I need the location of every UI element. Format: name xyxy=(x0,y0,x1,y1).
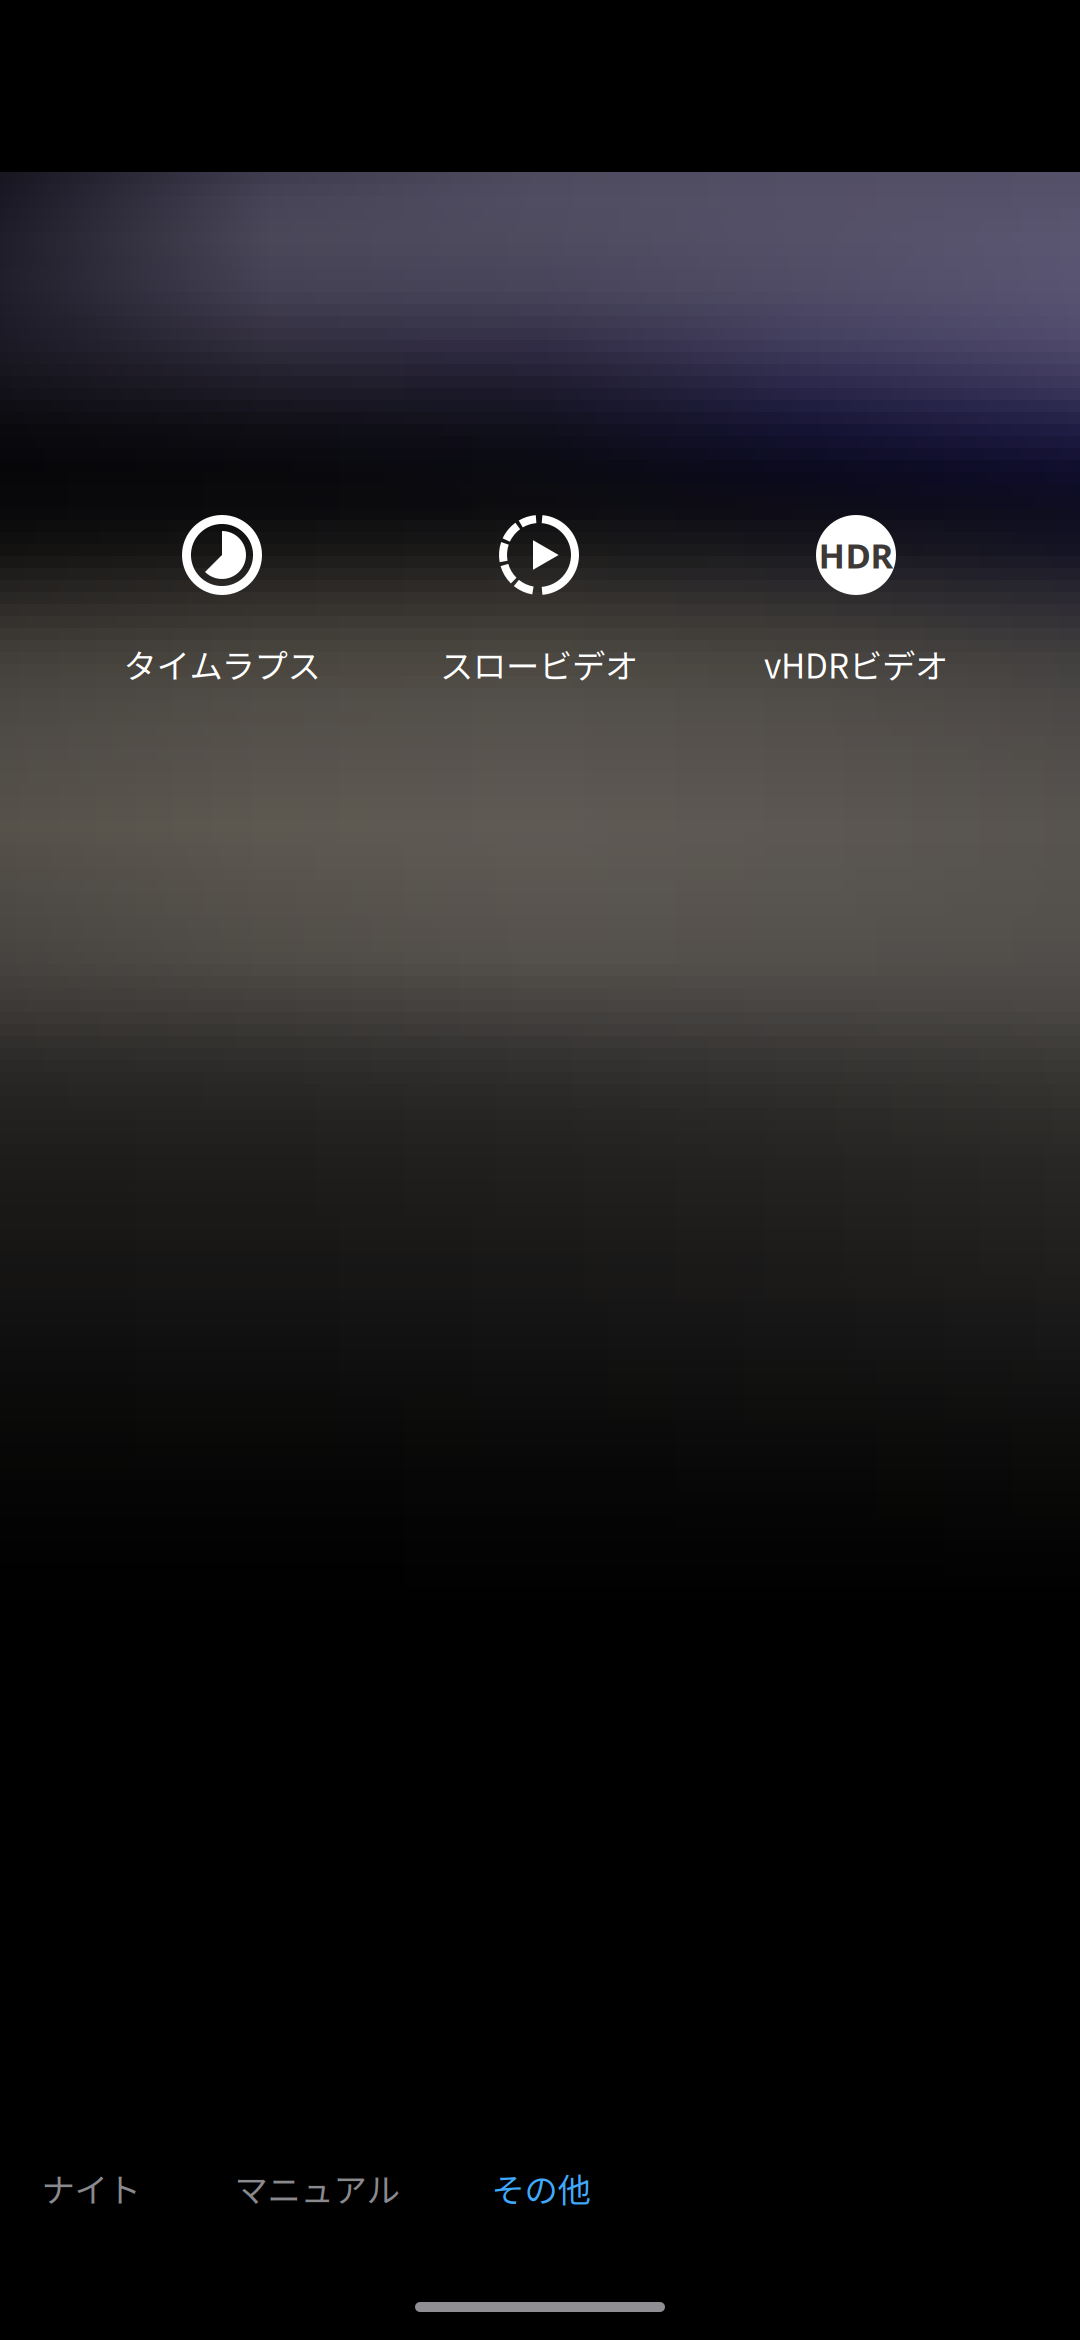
button[interactable]: ナイト xyxy=(41,2164,140,2212)
button[interactable] xyxy=(389,460,689,650)
button[interactable]: HDR xyxy=(706,460,1006,650)
button[interactable] xyxy=(72,460,372,650)
staticText: vHDRビデオ xyxy=(764,640,948,688)
staticText: その他 xyxy=(491,2164,590,2212)
staticText: タイムラプス xyxy=(123,640,320,688)
button[interactable]: マニュアル xyxy=(234,2164,399,2212)
staticText: ナイト xyxy=(41,2164,140,2212)
staticText: スロービデオ xyxy=(440,640,638,688)
staticText: HDR xyxy=(818,532,893,578)
button[interactable]: その他 xyxy=(491,2164,590,2212)
staticText: マニュアル xyxy=(234,2164,399,2212)
